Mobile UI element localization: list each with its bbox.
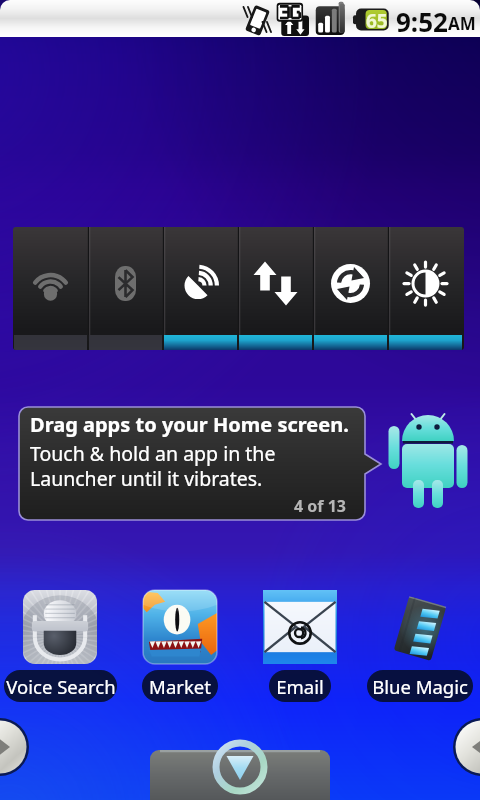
- staticText: Blue Magic: [372, 674, 468, 699]
- button[interactable]: Voice Search: [0, 590, 120, 702]
- button[interactable]: Auto sync: [313, 227, 388, 350]
- staticText: Voice Search: [6, 674, 116, 699]
- button[interactable]: Bluetooth: [88, 227, 163, 350]
- button[interactable]: Wi-Fi: [13, 227, 88, 350]
- staticText: Email: [276, 674, 324, 699]
- button[interactable]: Email: [240, 590, 360, 702]
- button[interactable]: GPS: [163, 227, 238, 350]
- button[interactable]: Blue Magic: [360, 590, 480, 702]
- button[interactable]: All apps: [150, 750, 330, 800]
- staticText: Drag apps to your Home screen.: [30, 411, 349, 438]
- button[interactable]: Previous screen: [453, 718, 480, 776]
- button[interactable]: Sync data: [238, 227, 313, 350]
- button[interactable]: Open application drawer: [214, 741, 266, 793]
- staticText: 4 of 13: [294, 495, 346, 517]
- staticText: Market: [149, 674, 211, 699]
- staticText: 9:52: [396, 4, 448, 37]
- button[interactable]: Brightness: [388, 227, 463, 350]
- staticText: 65: [366, 8, 388, 33]
- button[interactable]: Market: [120, 590, 240, 702]
- staticText: AM: [448, 12, 476, 35]
- staticText: Touch & hold an app in the Launcher unti…: [30, 440, 276, 492]
- button[interactable]: Next screen: [0, 718, 29, 776]
